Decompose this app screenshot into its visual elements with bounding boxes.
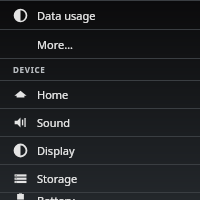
staticText: More… <box>37 37 73 52</box>
staticText: Home <box>37 87 69 102</box>
button[interactable]: More… <box>0 30 200 58</box>
staticText: Display <box>37 143 75 158</box>
other: Data usage <box>14 9 27 22</box>
button[interactable]: Display <box>0 137 200 164</box>
other: Sound <box>14 116 27 129</box>
other: Battery <box>14 193 27 200</box>
other: Display <box>14 144 27 157</box>
staticText: Sound <box>37 115 71 130</box>
staticText: Data usage <box>37 8 96 23</box>
button[interactable]: Storage <box>0 165 200 192</box>
staticText: DEVICE <box>13 64 46 75</box>
button[interactable]: Sound <box>0 109 200 136</box>
button[interactable]: Battery <box>0 193 200 200</box>
staticText: Storage <box>37 171 78 186</box>
button[interactable]: Data usage <box>0 1 200 29</box>
staticText: Battery <box>37 193 75 200</box>
other: Home <box>14 88 27 101</box>
button[interactable]: Home <box>0 81 200 108</box>
other: Storage <box>14 172 27 185</box>
